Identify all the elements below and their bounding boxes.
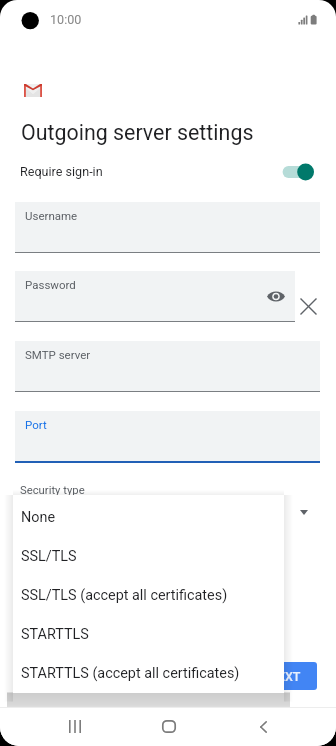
staticText: Password	[25, 278, 76, 291]
button[interactable]: STARTTLS	[13, 615, 284, 654]
button[interactable]: Back	[239, 707, 287, 746]
staticText: SSL/TLS	[21, 548, 77, 565]
button[interactable]: SSL/TLS	[13, 537, 284, 576]
button[interactable]: Port	[15, 411, 320, 463]
button[interactable]: None	[13, 498, 284, 537]
staticText: None	[21, 509, 56, 526]
staticText: NEXT	[269, 669, 301, 684]
staticText: Security type	[20, 484, 85, 497]
staticText: Require sign-in	[20, 164, 103, 179]
button[interactable]: Home	[145, 707, 193, 746]
button[interactable]: Show password	[264, 284, 288, 308]
staticText: Username	[25, 209, 78, 222]
button[interactable]: Require sign-in toggle	[270, 160, 314, 184]
staticText: SMTP server	[25, 348, 91, 361]
staticText: Port	[25, 418, 47, 431]
button[interactable]: SMTP server	[15, 341, 320, 392]
staticText: STARTTLS	[21, 626, 89, 643]
staticText: STARTTLS (accept all certificates)	[21, 665, 240, 682]
button[interactable]: Expand security type	[292, 500, 316, 524]
button[interactable]: Clear password	[297, 295, 319, 317]
button[interactable]: SSL/TLS (accept all certificates)	[13, 576, 284, 615]
staticText: SSL/TLS (accept all certificates)	[21, 587, 228, 604]
button[interactable]: Password	[15, 271, 295, 322]
button[interactable]: Recent apps	[51, 707, 99, 746]
button[interactable]: Require sign-in	[20, 157, 314, 186]
button[interactable]: STARTTLS (accept all certificates)	[13, 654, 284, 693]
button[interactable]: Username	[15, 202, 320, 253]
staticText: 10:00	[50, 12, 82, 27]
button[interactable]: NEXT	[252, 662, 317, 690]
staticText: Outgoing server settings	[21, 120, 254, 145]
